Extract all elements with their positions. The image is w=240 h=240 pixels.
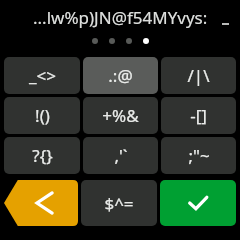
- staticText: +%&: [102, 104, 139, 127]
- button[interactable]: .:@: [83, 57, 158, 94]
- button[interactable]: $^=: [81, 180, 157, 226]
- staticText: .:@: [108, 64, 133, 87]
- staticText: ?{}: [32, 144, 53, 167]
- button[interactable]: /|\: [161, 57, 236, 94]
- staticText: ;"~: [188, 144, 210, 167]
- button[interactable]: ...lw%p)JN@f54MYvys:: [0, 0, 240, 34]
- button[interactable]: Confirm: [160, 180, 236, 226]
- button[interactable]: Backspace: [2, 180, 78, 226]
- button[interactable]: ,'`: [83, 137, 158, 174]
- button[interactable]: !(): [4, 97, 80, 134]
- staticText: ...lw%p)JN@f54MYvys:: [33, 6, 208, 29]
- staticText: /|\: [187, 64, 210, 87]
- button[interactable]: ?{}: [4, 137, 80, 174]
- button[interactable]: +%&: [83, 97, 158, 134]
- button[interactable]: ;"~: [161, 137, 236, 174]
- staticText: -[]: [190, 104, 207, 127]
- button[interactable]: _<>: [4, 57, 80, 94]
- button[interactable]: -[]: [161, 97, 236, 134]
- staticText: $^=: [104, 192, 134, 215]
- staticText: _<>: [29, 64, 56, 87]
- staticText: !(): [35, 104, 50, 127]
- staticText: ,'`: [114, 144, 128, 167]
